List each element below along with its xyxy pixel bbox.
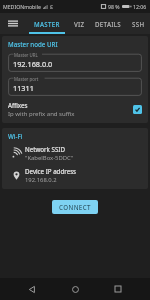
button[interactable]: VIZ: [68, 13, 90, 34]
button[interactable]: Back: [21, 278, 43, 300]
button[interactable]: Device IP address: [8, 167, 142, 184]
button[interactable]: DETAILS: [90, 13, 126, 34]
button[interactable]: Affixes: [8, 101, 142, 118]
staticText: 98 %: [108, 3, 120, 10]
other: Wi-Fi network: [12, 149, 21, 158]
staticText: MASTER: [34, 20, 60, 28]
button[interactable]: SSH: [126, 13, 150, 34]
staticText: 11311: [13, 83, 34, 93]
staticText: Master URL: [14, 52, 38, 58]
staticText: VIZ: [74, 20, 85, 28]
staticText: Affixes: [8, 101, 28, 109]
button[interactable]: Wi-Fi network: [8, 145, 142, 162]
other: Device IP address: [12, 171, 21, 180]
staticText: Master node URI: [8, 40, 58, 48]
staticText: "KabelBox-5DDC": [25, 154, 74, 162]
button[interactable]: Home: [64, 278, 86, 300]
staticText: Network SSID: [25, 145, 65, 153]
staticText: 12:06: [133, 3, 147, 10]
staticText: Ip with prefix and suffix: [8, 110, 75, 118]
staticText: Wi-Fi: [8, 132, 23, 140]
staticText: 192.168.0.2: [25, 176, 57, 184]
button[interactable]: Open navigation menu: [0, 13, 26, 34]
staticText: Master port: [14, 76, 39, 82]
staticText: MEDIONmobile: [3, 3, 41, 10]
staticText: DETAILS: [95, 20, 122, 28]
button[interactable]: MASTER: [26, 13, 68, 34]
staticText: SSH: [132, 20, 145, 28]
staticText: Device IP address: [25, 167, 77, 175]
button[interactable]: Recent apps: [107, 278, 129, 300]
staticText: 192.168.0.0: [13, 59, 53, 69]
staticText: ℇ: [50, 3, 54, 10]
staticText: CONNECT: [59, 203, 91, 211]
button[interactable]: CONNECT: [52, 200, 98, 214]
